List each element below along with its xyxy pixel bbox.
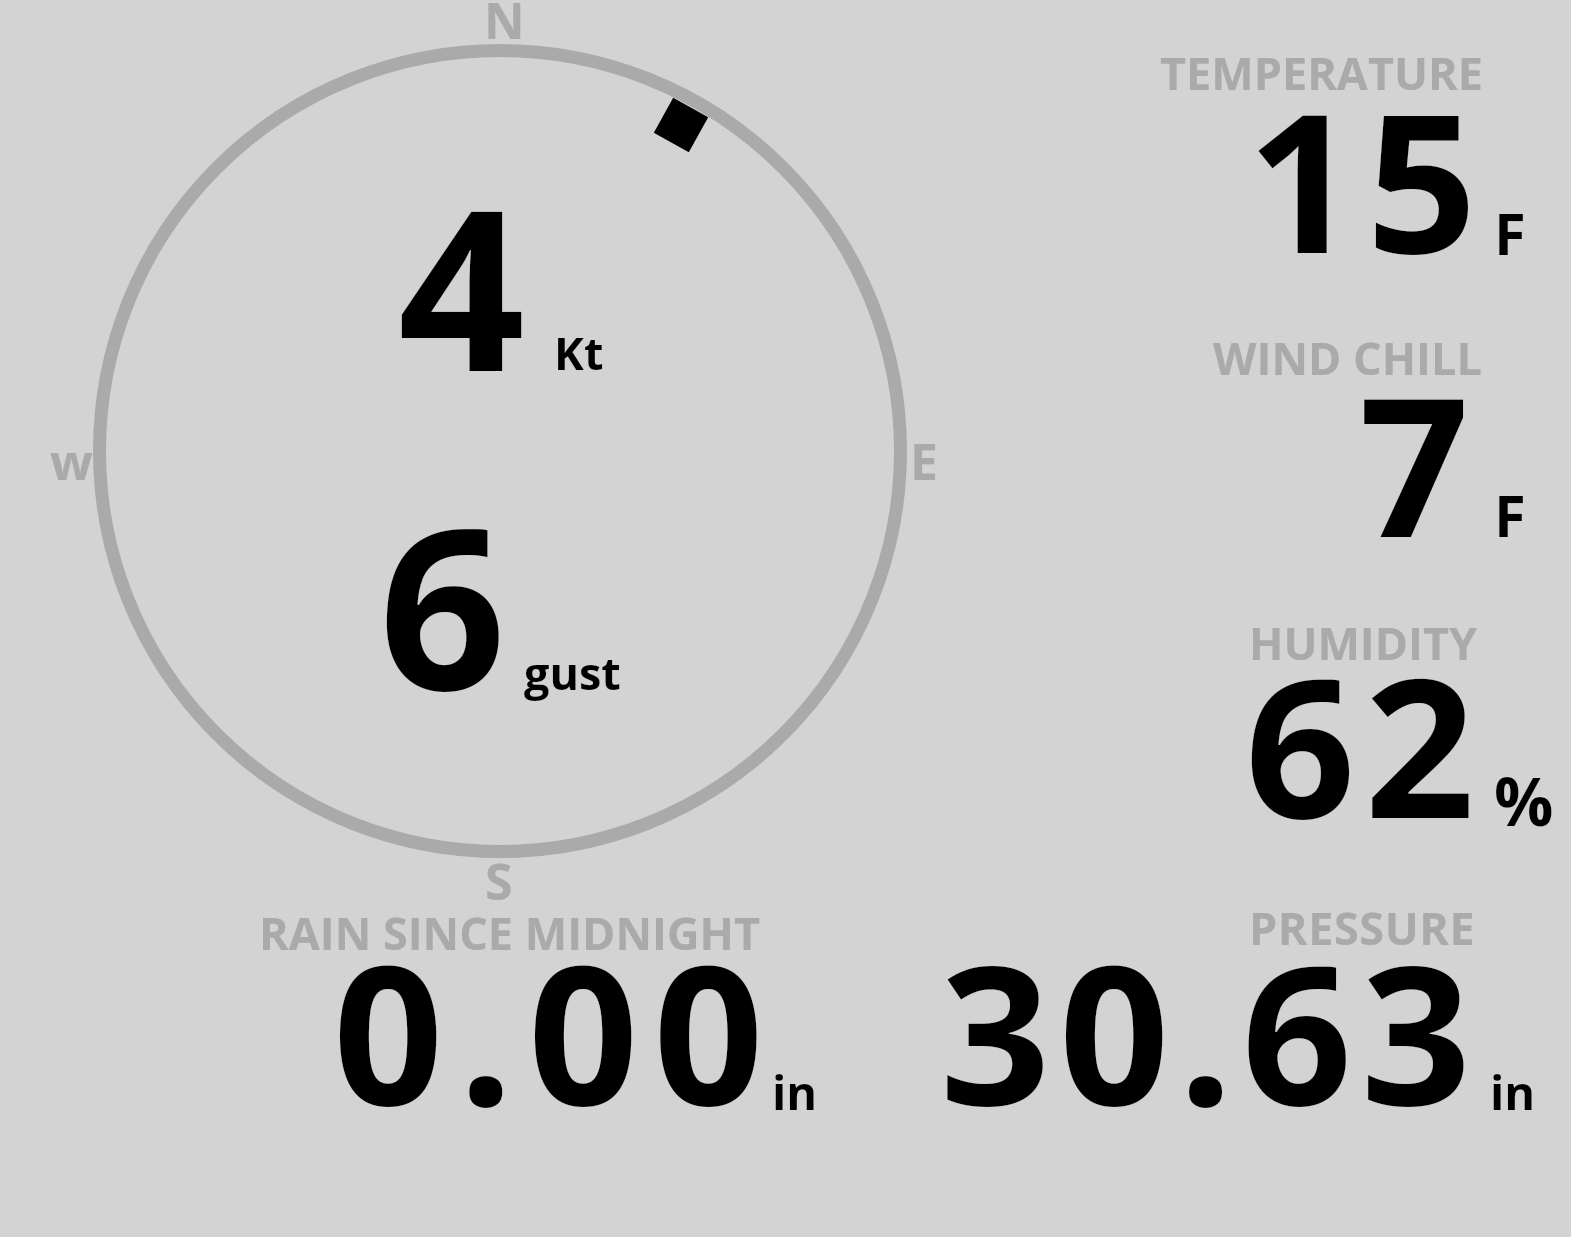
staticText: F bbox=[1494, 193, 1526, 272]
staticText: 62 bbox=[1245, 612, 1484, 875]
staticText: TEMPERATURE bbox=[1160, 42, 1483, 103]
staticText: 0.00 bbox=[333, 899, 779, 1162]
staticText: 6 bbox=[379, 453, 506, 755]
staticText: RAIN SINCE MIDNIGHT bbox=[259, 902, 760, 963]
staticText: gust bbox=[524, 642, 621, 703]
staticText: 30.63 bbox=[940, 899, 1480, 1162]
staticText: HUMIDITY bbox=[1249, 612, 1478, 673]
staticText: F bbox=[1494, 475, 1526, 554]
staticText: w bbox=[50, 427, 93, 495]
button[interactable]: Rain since midnight 0.00 inches bbox=[240, 890, 840, 1130]
staticText: 7 bbox=[1359, 331, 1479, 594]
staticText: Kt bbox=[554, 322, 604, 383]
staticText: N bbox=[484, 0, 525, 54]
button[interactable]: Wind direction compass, 4 knots gusting … bbox=[88, 39, 912, 863]
button[interactable]: Humidity 62 percent bbox=[1000, 594, 1560, 879]
button[interactable]: Wind chill 7 degrees Fahrenheit bbox=[1000, 309, 1560, 594]
button[interactable]: Temperature 15 degrees Fahrenheit bbox=[1000, 24, 1560, 309]
button[interactable]: Pressure 30.63 inches bbox=[930, 890, 1550, 1130]
staticText: % bbox=[1494, 755, 1554, 845]
staticText: S bbox=[485, 847, 513, 915]
staticText: E bbox=[910, 427, 939, 495]
staticText: WIND CHILL bbox=[1213, 327, 1482, 388]
staticText: in bbox=[772, 1060, 818, 1124]
staticText: 15 bbox=[1247, 47, 1486, 310]
staticText: 4 bbox=[398, 134, 525, 436]
staticText: in bbox=[1490, 1060, 1536, 1124]
staticText: PRESSURE bbox=[1249, 897, 1476, 958]
